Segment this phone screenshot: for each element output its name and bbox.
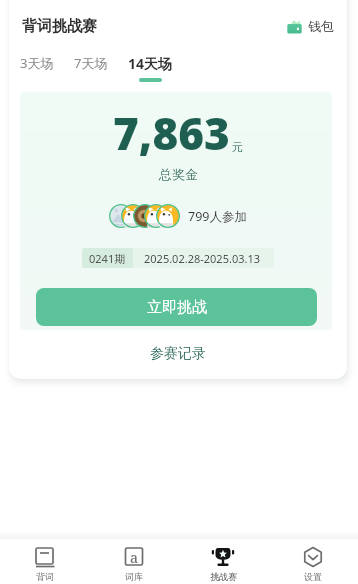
staticText: 背词挑战赛 (22, 17, 97, 36)
staticText: 钱包 (308, 18, 334, 34)
button[interactable]: 参赛记录 (138, 341, 218, 367)
staticText: 词库 (125, 571, 143, 582)
staticText: 14天场 (128, 54, 173, 73)
staticText: 799人参加 (188, 208, 247, 225)
button[interactable]: 钱包 (287, 12, 334, 40)
button[interactable]: 3天场 (10, 48, 64, 87)
staticText: 7,863 (113, 103, 230, 163)
button[interactable]: 背词 (0, 539, 89, 584)
button[interactable]: 立即挑战 (36, 288, 317, 326)
button[interactable]: 设置 (268, 539, 358, 584)
button[interactable]: a (89, 539, 178, 584)
staticText: 2025.02.28-2025.03.13 (144, 251, 261, 266)
staticText: 挑战赛 (210, 571, 237, 582)
staticText: 背词 (36, 571, 54, 582)
staticText: 立即挑战 (147, 298, 207, 317)
staticText: 元 (232, 140, 243, 154)
staticText: 总奖金 (159, 166, 198, 182)
staticText: 7天场 (74, 54, 108, 72)
staticText: 3天场 (20, 54, 54, 72)
staticText: 参赛记录 (150, 345, 206, 363)
staticText: 设置 (304, 571, 322, 582)
other: 钱包 (287, 19, 302, 34)
button[interactable]: 挑战赛 (178, 539, 268, 584)
staticText: a (130, 548, 139, 567)
button[interactable]: 7天场 (64, 48, 118, 87)
button[interactable]: 14天场 (118, 48, 183, 88)
staticText: 0241期 (89, 251, 126, 266)
